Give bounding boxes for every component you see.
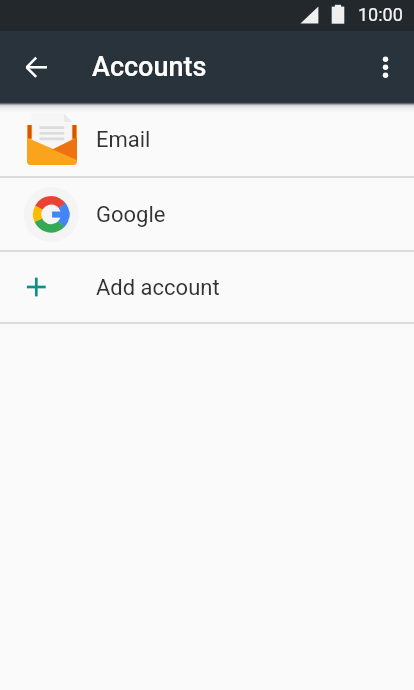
- staticText: Add account: [96, 275, 220, 301]
- button[interactable]: More options: [358, 31, 414, 102]
- staticText: Email: [96, 127, 151, 153]
- staticText: Accounts: [92, 51, 207, 83]
- button[interactable]: Add account: [0, 252, 414, 322]
- button[interactable]: Email: [0, 102, 414, 176]
- staticText: Google: [96, 202, 166, 228]
- staticText: 10:00: [358, 4, 403, 25]
- button[interactable]: Back: [0, 31, 62, 102]
- button[interactable]: Google: [0, 178, 414, 250]
